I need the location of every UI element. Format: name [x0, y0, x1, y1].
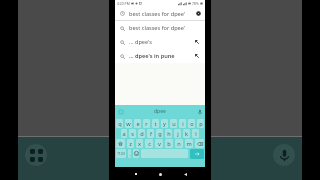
staticText: , — [129, 151, 131, 157]
staticText: ... dpee's in pune — [129, 52, 175, 60]
staticText: dpee — [154, 108, 166, 115]
staticText: best classes for dpee' — [129, 24, 186, 32]
button[interactable]: c — [145, 139, 153, 148]
button[interactable]: Emoji — [133, 149, 139, 158]
button[interactable]: ... dpee's — [115, 35, 205, 49]
staticText: 4:20 PM — [117, 1, 130, 6]
button[interactable]: b — [165, 139, 173, 148]
button[interactable]: Enter — [190, 149, 204, 159]
button[interactable]: Home — [156, 170, 164, 178]
staticText: b — [167, 140, 171, 148]
staticText: q — [118, 120, 122, 128]
button[interactable]: t — [152, 119, 159, 128]
staticText: o — [190, 120, 194, 128]
button[interactable]: best classes for dpee' — [115, 7, 205, 20]
staticText: e — [136, 120, 140, 128]
staticText: a — [122, 130, 126, 138]
button[interactable]: x — [136, 139, 143, 148]
button[interactable]: e — [134, 119, 141, 128]
button[interactable]: Microphone — [273, 144, 295, 166]
staticText: 78% — [192, 1, 199, 6]
staticText: s — [131, 130, 134, 138]
button[interactable]: Apps — [25, 144, 47, 166]
button[interactable]: o — [188, 119, 195, 128]
button[interactable]: q — [116, 119, 123, 128]
button[interactable]: z — [127, 139, 134, 148]
button[interactable]: w — [125, 119, 132, 128]
staticText: t — [154, 120, 157, 128]
staticText: f — [150, 130, 152, 138]
staticText: k — [185, 130, 188, 138]
staticText: y — [163, 120, 166, 128]
button[interactable]: r — [143, 119, 150, 128]
button[interactable]: ?123 — [116, 149, 126, 158]
button[interactable]: a — [121, 129, 127, 138]
button[interactable]: , — [128, 149, 131, 158]
other: Emoji — [134, 151, 139, 156]
button[interactable]: Recents — [132, 170, 140, 178]
staticText: i — [182, 120, 184, 128]
button[interactable]: n — [175, 139, 183, 148]
staticText: c — [148, 140, 151, 148]
button[interactable]: k — [183, 129, 190, 138]
other: Backspace — [197, 141, 203, 147]
button[interactable]: best classes for dpee' — [115, 21, 205, 35]
button[interactable]: ... dpee's in pune — [115, 49, 205, 63]
staticText: ... dpee's — [129, 38, 152, 46]
staticText: w — [126, 120, 131, 128]
button[interactable]: Shift — [116, 139, 125, 148]
button[interactable]: d — [138, 129, 145, 138]
button[interactable]: Voice input — [196, 108, 203, 115]
button[interactable]: m — [185, 139, 193, 148]
staticText: r — [145, 120, 148, 128]
staticText: g — [158, 130, 162, 138]
staticText: u — [172, 120, 176, 128]
button[interactable]: p — [197, 119, 204, 128]
button[interactable]: u — [170, 119, 177, 128]
staticText: x — [138, 140, 141, 148]
staticText: ?123 — [117, 151, 125, 156]
staticText: best classes for dpee' — [129, 10, 186, 18]
staticText: l — [195, 130, 197, 138]
button[interactable]: Back — [181, 170, 189, 178]
button[interactable]: Backspace — [195, 139, 204, 148]
staticText: z — [129, 140, 132, 148]
staticText: p — [199, 120, 203, 128]
button[interactable]: l — [192, 129, 199, 138]
button[interactable]: y — [161, 119, 168, 128]
button[interactable]: i — [179, 119, 186, 128]
button[interactable]: g — [156, 129, 163, 138]
other: Shift — [118, 141, 123, 146]
button[interactable]: h — [165, 129, 172, 138]
staticText: h — [167, 130, 171, 138]
button[interactable]: f — [147, 129, 154, 138]
staticText: m — [186, 140, 192, 148]
button[interactable]: Keyboard settings — [117, 108, 124, 115]
staticText: v — [158, 140, 161, 148]
button[interactable]: v — [155, 139, 163, 148]
button[interactable]: s — [129, 129, 136, 138]
staticText: d — [140, 130, 144, 138]
staticText: j — [177, 130, 179, 138]
button[interactable]: j — [174, 129, 181, 138]
staticText: n — [177, 140, 181, 148]
